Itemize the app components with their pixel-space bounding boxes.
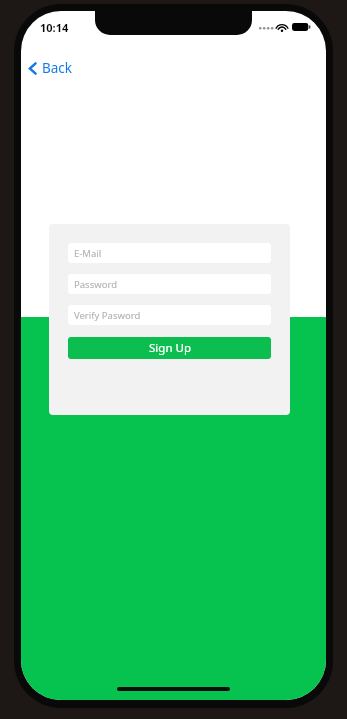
staticText: Verify Pasword <box>74 309 141 322</box>
staticText: E-Mail <box>74 247 102 260</box>
button[interactable]: Verify Pasword <box>68 305 271 325</box>
button[interactable]: E-Mail <box>68 243 271 263</box>
button[interactable]: Sign Up <box>68 337 271 359</box>
other: Wi-Fi <box>276 23 288 32</box>
button[interactable]: Back <box>23 54 77 82</box>
staticText: 10:14 <box>40 20 69 35</box>
staticText: Sign Up <box>149 340 191 356</box>
other: Battery <box>292 22 311 32</box>
staticText: Back <box>42 59 73 77</box>
other: Cellular signal <box>259 23 273 31</box>
button[interactable]: Password <box>68 274 271 294</box>
staticText: Password <box>74 278 117 291</box>
